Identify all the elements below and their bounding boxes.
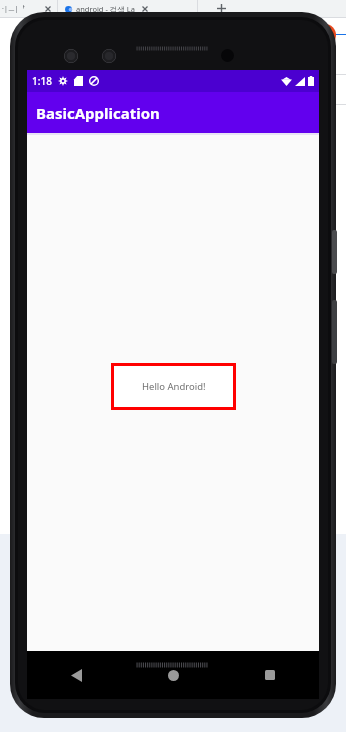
- button[interactable]: Close tab: [44, 5, 52, 13]
- staticText: BasicApplication: [36, 103, 160, 123]
- staticText: Hello Android!: [142, 380, 206, 393]
- staticText: 1:18: [32, 74, 52, 88]
- staticText: android - 검색 La: [76, 4, 135, 14]
- staticText: ·|ㅡ|ᅡ: [2, 4, 26, 14]
- button[interactable]: Close tab: [141, 5, 149, 13]
- button[interactable]: Volume button: [332, 300, 337, 364]
- button[interactable]: Recent apps: [255, 660, 285, 690]
- button[interactable]: New tab: [208, 0, 234, 17]
- button[interactable]: Power button: [332, 230, 337, 274]
- button[interactable]: Hello Android!: [111, 363, 236, 410]
- button[interactable]: Back: [61, 660, 91, 690]
- button[interactable]: Home: [158, 660, 188, 690]
